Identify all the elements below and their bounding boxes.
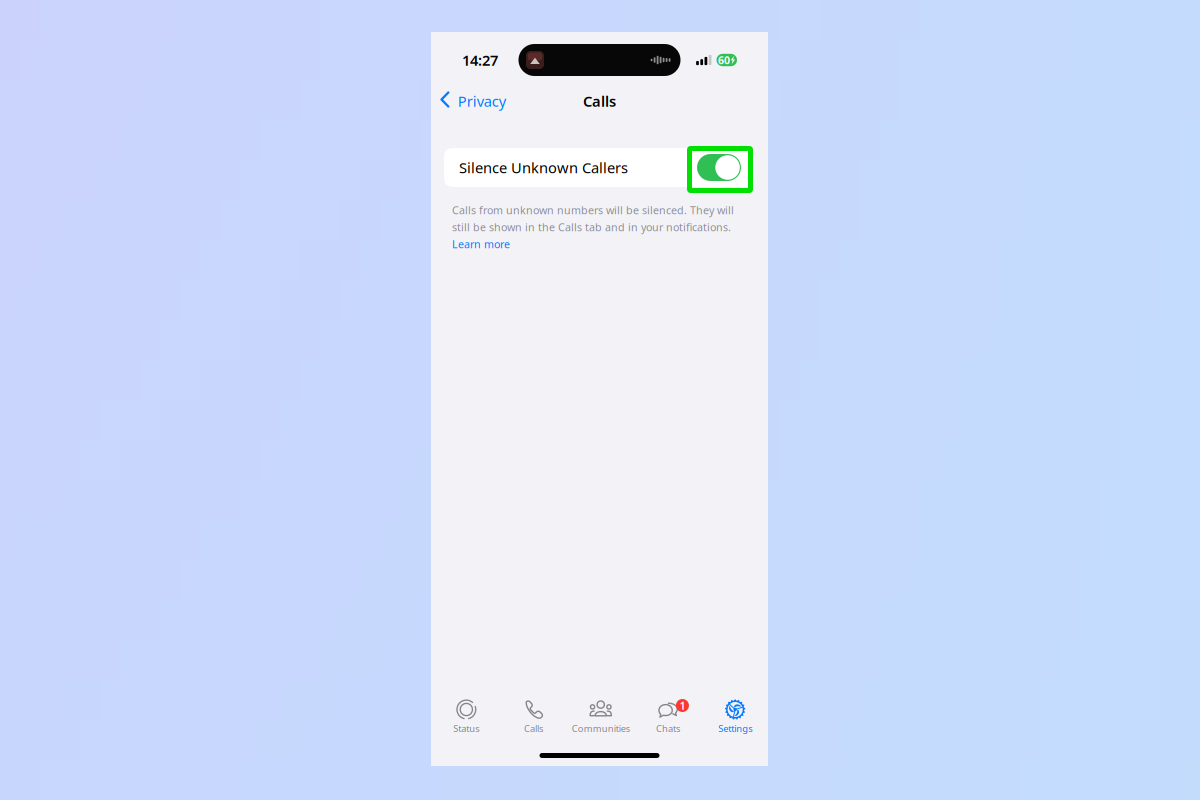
button[interactable]: Silence Unknown Callers — [444, 148, 755, 187]
staticText: Calls from unknown numbers will be silen… — [452, 203, 734, 217]
button[interactable]: Calls — [500, 697, 567, 735]
staticText: still be shown in the Calls tab and in y… — [452, 220, 731, 234]
button[interactable]: 1 — [634, 697, 702, 735]
staticText: Chats — [656, 722, 680, 735]
staticText: Communities — [572, 722, 630, 735]
staticText: Calls — [524, 722, 543, 735]
staticText: Privacy — [458, 91, 506, 111]
button[interactable]: Privacy — [431, 86, 514, 116]
button[interactable]: Communities — [567, 697, 634, 735]
button[interactable]: Learn more — [452, 237, 510, 251]
button[interactable]: Status — [433, 697, 500, 735]
staticText: Settings — [718, 722, 752, 735]
staticText: Calls — [583, 91, 616, 111]
staticText: 14:27 — [462, 50, 498, 70]
button[interactable]: Settings — [701, 697, 769, 735]
staticText: 1 — [679, 698, 685, 713]
staticText: Status — [453, 722, 479, 735]
staticText: Learn more — [452, 237, 510, 251]
staticText: Silence Unknown Callers — [459, 158, 628, 177]
staticText: 60 — [718, 53, 730, 67]
